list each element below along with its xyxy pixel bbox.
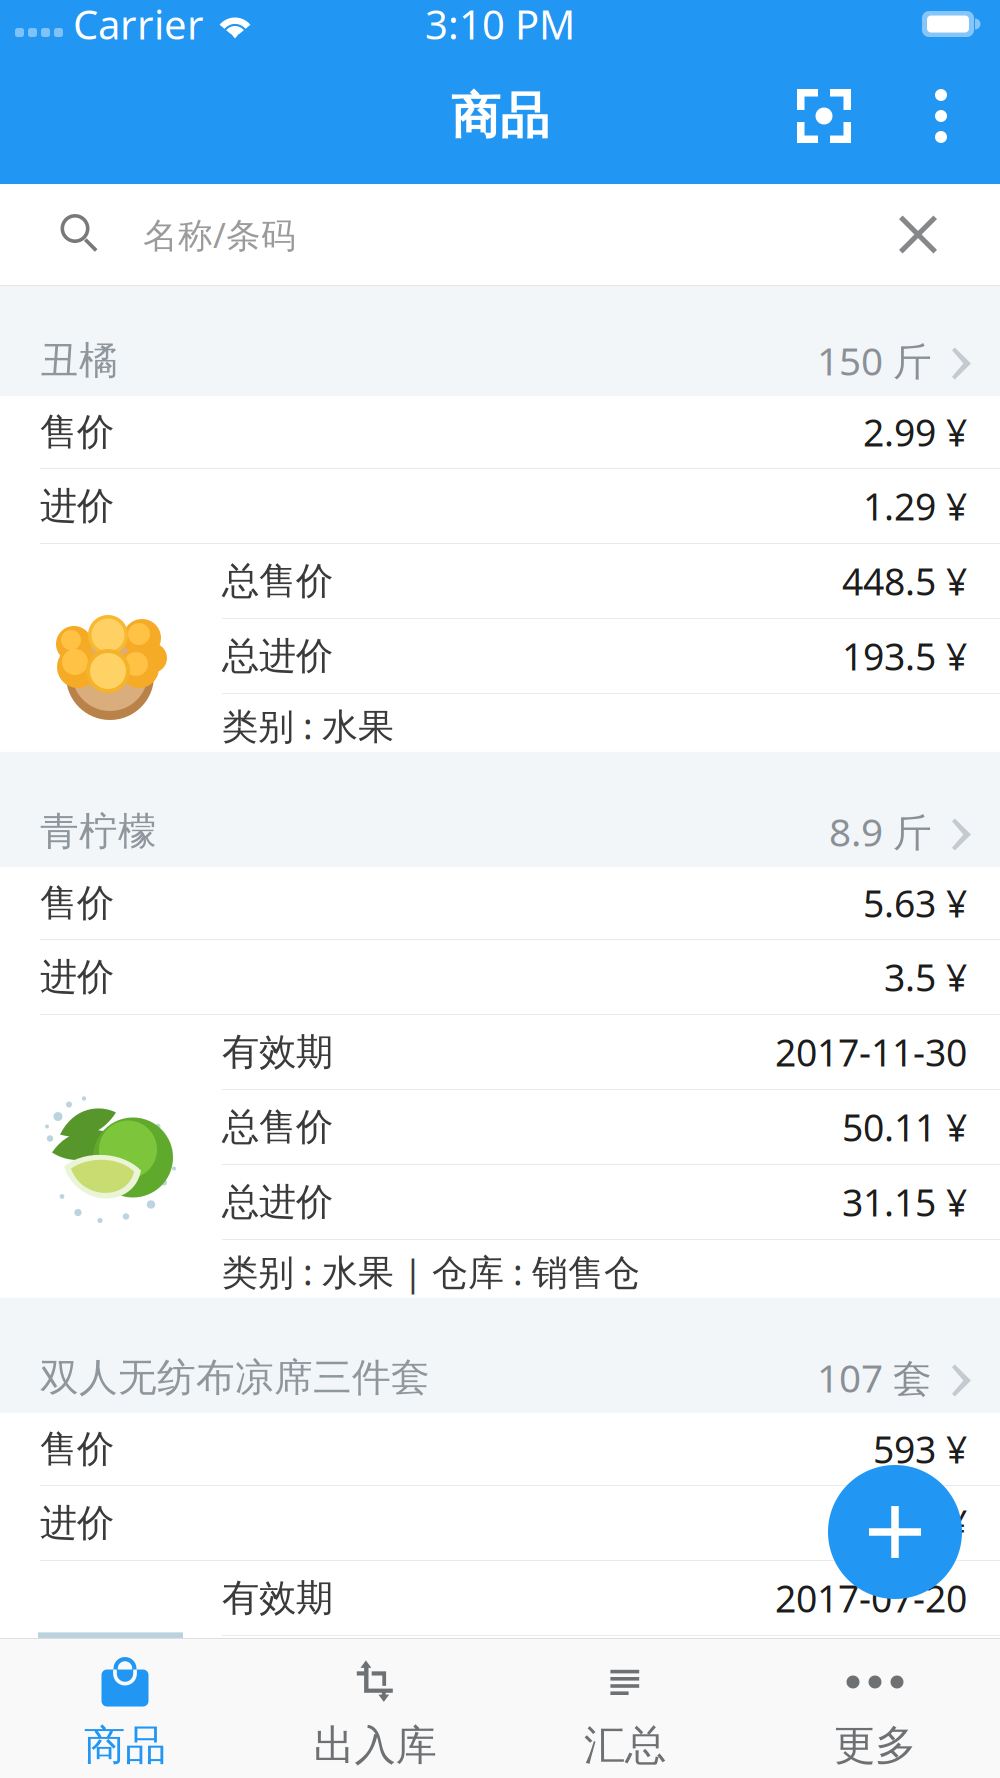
button[interactable]: 汇总 <box>500 1639 750 1778</box>
staticText: 5.63 ¥ <box>863 878 967 928</box>
staticText: 3:10 PM <box>425 0 575 50</box>
staticText: Carrier <box>73 0 204 50</box>
staticText: 售价 <box>40 409 114 455</box>
staticText: 总进价 <box>222 1179 333 1225</box>
staticText: 进价 <box>40 483 114 529</box>
staticText: 31.15 ¥ <box>842 1177 967 1227</box>
staticText: 总售价 <box>222 558 333 604</box>
button[interactable]: 双人无纺布凉席三件套 <box>0 1303 1000 1413</box>
button[interactable]: 出入库 <box>250 1639 500 1778</box>
staticText: 1.29 ¥ <box>863 481 967 531</box>
staticText: 150 斤 <box>817 335 932 386</box>
staticText: 8.9 斤 <box>829 806 932 857</box>
staticText: 名称/条码 <box>143 211 296 257</box>
button[interactable]: 售价 <box>0 867 1000 1303</box>
staticText: 50.11 ¥ <box>842 1102 967 1152</box>
staticText: 63451 ¥ <box>831 1648 967 1698</box>
staticText: 107 套 <box>817 1352 932 1403</box>
button[interactable]: 青柠檬 <box>0 757 1000 867</box>
staticText: 有效期 <box>222 1029 333 1075</box>
staticText: 丑橘 <box>40 337 118 384</box>
staticText: 3.5 ¥ <box>884 952 967 1002</box>
staticText: 2017-11-30 <box>775 1027 967 1077</box>
staticText: 有效期 <box>222 1575 333 1621</box>
button[interactable]: Clear search <box>858 184 978 285</box>
staticText: 总进价 <box>222 633 333 679</box>
staticText: 商品 <box>84 1720 166 1771</box>
staticText: 售价 <box>40 880 114 926</box>
staticText: 出入库 <box>313 1720 436 1771</box>
staticText: 593 ¥ <box>873 1424 967 1474</box>
staticText: 总进价 <box>222 1725 333 1771</box>
staticText: 448.5 ¥ <box>842 556 967 606</box>
staticText: 更多 <box>834 1720 916 1771</box>
staticText: 41516 ¥ <box>831 1723 967 1773</box>
staticText: 类别 : 水果 <box>222 702 394 749</box>
staticText: 2.99 ¥ <box>863 407 967 457</box>
staticText: 进价 <box>40 954 114 1000</box>
button[interactable]: Scan barcode <box>766 48 882 184</box>
staticText: 388 ¥ <box>873 1498 967 1548</box>
staticText: 青柠檬 <box>40 808 157 855</box>
button[interactable]: 更多 <box>750 1639 1000 1778</box>
button[interactable]: Add product <box>810 1447 980 1617</box>
staticText: 双人无纺布凉席三件套 <box>40 1354 430 1401</box>
staticText: 商品 <box>451 86 549 146</box>
button[interactable]: 商品 <box>0 1639 250 1778</box>
staticText: 汇总 <box>584 1720 666 1771</box>
button[interactable]: 售价 <box>0 396 1000 757</box>
button[interactable]: 丑橘 <box>0 286 1000 396</box>
staticText: 类别 : 水果 | 仓库 : 销售仓 <box>222 1248 640 1295</box>
staticText: 售价 <box>40 1426 114 1472</box>
staticText: 进价 <box>40 1500 114 1546</box>
staticText: 193.5 ¥ <box>842 631 967 681</box>
staticText: 总售价 <box>222 1104 333 1150</box>
button[interactable]: More options <box>882 48 1000 184</box>
button[interactable]: 售价 <box>0 1413 1000 1778</box>
staticText: 2017-07-20 <box>775 1573 967 1623</box>
